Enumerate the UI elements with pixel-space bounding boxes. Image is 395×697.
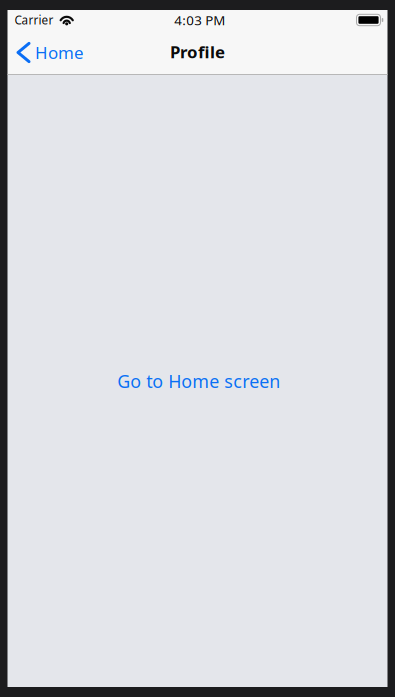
- staticText: Carrier: [14, 12, 53, 28]
- staticText: Home: [35, 41, 84, 64]
- staticText: Go to Home screen: [117, 369, 280, 393]
- button[interactable]: Go to Home screen: [109, 364, 288, 398]
- staticText: Profile: [170, 40, 225, 63]
- button[interactable]: Back to Home: [7, 30, 94, 75]
- staticText: 4:03 PM: [174, 11, 225, 29]
